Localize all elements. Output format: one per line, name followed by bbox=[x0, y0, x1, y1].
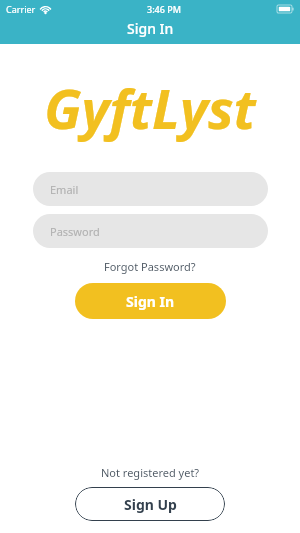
other: Wi-Fi bbox=[40, 5, 51, 14]
staticText: Forgot Password? bbox=[104, 259, 196, 274]
other: Battery bbox=[277, 5, 294, 13]
button[interactable]: Email bbox=[33, 172, 268, 206]
staticText: GyftLyst bbox=[44, 71, 256, 145]
staticText: 3:46 PM bbox=[147, 3, 181, 15]
staticText: Password bbox=[50, 224, 100, 239]
staticText: Email bbox=[50, 182, 79, 197]
staticText: Sign In bbox=[126, 292, 175, 311]
staticText: Carrier bbox=[6, 3, 36, 15]
button[interactable]: Password bbox=[33, 214, 268, 248]
button[interactable]: Forgot Password? bbox=[0, 257, 300, 276]
staticText: Sign Up bbox=[124, 495, 177, 514]
button[interactable]: Sign In bbox=[75, 283, 226, 319]
button[interactable]: Sign Up bbox=[75, 487, 225, 521]
staticText: Not registered yet? bbox=[101, 465, 200, 480]
staticText: Sign In bbox=[127, 19, 174, 38]
